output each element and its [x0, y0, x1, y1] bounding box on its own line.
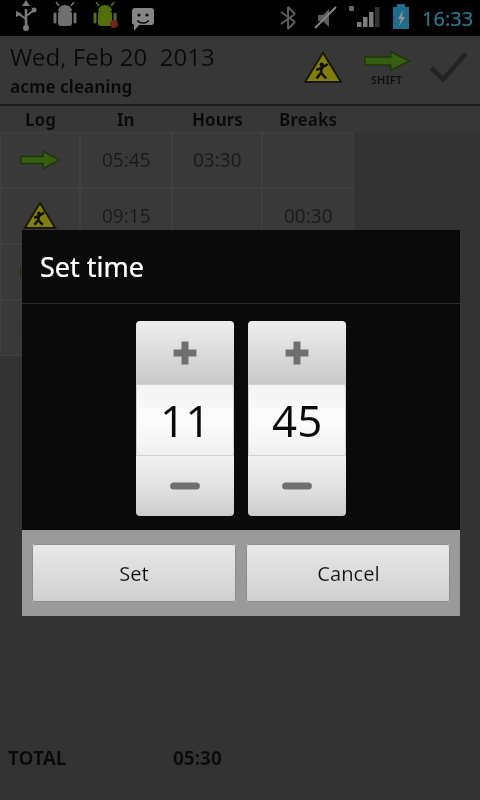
staticText: 11 [160, 390, 211, 450]
staticText: acme cleaning [10, 75, 133, 98]
staticText: 05:45 [102, 147, 151, 173]
button[interactable]: Decrement [136, 456, 234, 516]
staticText: Hours [192, 108, 243, 131]
button[interactable]: 05:45 [0, 132, 480, 188]
staticText: Breaks [279, 108, 337, 131]
staticText: 16:33 [422, 5, 474, 32]
button[interactable]: Shift [360, 45, 414, 91]
staticText: Cancel [317, 560, 380, 587]
staticText: SHIFT [371, 72, 403, 87]
staticText: 03:30 [193, 147, 242, 173]
button[interactable]: Break [300, 45, 346, 91]
staticText: TOTAL [8, 745, 67, 771]
button[interactable]: 02:00 [0, 244, 480, 300]
button[interactable]: 09:15 [0, 188, 480, 244]
button[interactable]: Confirm [422, 42, 474, 94]
staticText: 11:45 [102, 315, 151, 341]
staticText: Set time [40, 248, 145, 285]
button[interactable]: 11:45 [0, 300, 480, 356]
staticText: 45 [272, 390, 323, 450]
button[interactable]: Increment [136, 321, 234, 384]
button[interactable]: Set [32, 544, 236, 602]
staticText: Set [119, 560, 149, 587]
button[interactable]: Increment [248, 321, 346, 384]
staticText: Wed, Feb 20 2013 [10, 40, 215, 73]
staticText: 09:15 [102, 203, 151, 229]
button[interactable]: Cancel [246, 544, 450, 602]
button[interactable]: Decrement [248, 456, 346, 516]
staticText: Log [25, 108, 56, 131]
staticText: 05:30 [173, 745, 222, 771]
staticText: 00:30 [284, 203, 333, 229]
staticText: In [117, 108, 135, 131]
